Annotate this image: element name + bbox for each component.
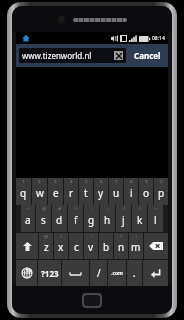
button[interactable]: -: [69, 233, 83, 259]
button[interactable]: ": [84, 233, 98, 259]
button[interactable]: @: [39, 233, 53, 259]
button[interactable]: Backspace: [144, 233, 168, 259]
staticText: 3: [54, 179, 57, 184]
staticText: ": [90, 234, 92, 239]
staticText: n: [118, 240, 125, 254]
button[interactable]: ~: [21, 205, 35, 232]
button[interactable]: #: [52, 205, 67, 232]
staticText: i: [130, 186, 133, 200]
button[interactable]: Cancel: [130, 48, 165, 63]
staticText: 5: [85, 179, 88, 184]
staticText: ?123: [41, 268, 59, 279]
button[interactable]: (: [116, 205, 131, 232]
staticText: 2: [38, 179, 41, 184]
staticText: .com: [111, 270, 123, 277]
button[interactable]: @: [36, 205, 51, 232]
staticText: Cancel: [134, 50, 161, 61]
staticText: d: [56, 213, 63, 227]
button[interactable]: 3: [48, 178, 63, 205]
staticText: 8: [130, 179, 133, 184]
button[interactable]: /: [90, 260, 107, 286]
staticText: u: [113, 186, 120, 200]
staticText: !: [135, 234, 137, 239]
staticText: z: [44, 240, 49, 254]
staticText: ,: [105, 234, 107, 239]
button[interactable]: !: [129, 233, 143, 259]
button[interactable]: Space: [62, 260, 89, 286]
staticText: ?: [120, 234, 122, 239]
staticText: #: [58, 206, 61, 211]
button[interactable]: www.tizenworld.nl: [19, 48, 126, 63]
staticText: g: [88, 213, 95, 227]
staticText: k: [137, 213, 143, 227]
staticText: e: [53, 186, 59, 200]
staticText: q: [20, 186, 27, 200]
other: Home: [22, 34, 30, 42]
staticText: ;: [107, 206, 109, 211]
staticText: f: [74, 213, 78, 227]
staticText: 0: [160, 179, 163, 184]
staticText: @: [44, 234, 48, 239]
button[interactable]: Home: [82, 293, 102, 308]
staticText: @: [42, 206, 46, 211]
staticText: -: [75, 234, 77, 239]
button[interactable]: .com: [108, 260, 126, 286]
button[interactable]: ;: [100, 205, 115, 232]
button[interactable]: ): [132, 205, 147, 232]
staticText: 6: [100, 179, 103, 184]
staticText: .: [133, 267, 136, 279]
staticText: 08:14: [152, 35, 165, 42]
staticText: ^: [74, 206, 77, 211]
staticText: 7: [115, 179, 118, 184]
staticText: /: [97, 266, 101, 280]
staticText: c: [74, 240, 79, 254]
button[interactable]: Shift: [16, 233, 38, 259]
staticText: x: [58, 240, 64, 254]
button[interactable]: 4: [64, 178, 78, 205]
staticText: w: [36, 186, 44, 200]
staticText: 9: [145, 179, 148, 184]
button[interactable]: 5: [79, 178, 93, 205]
staticText: j: [122, 213, 125, 227]
staticText: m: [131, 240, 141, 254]
button[interactable]: 8: [124, 178, 138, 205]
button[interactable]: ?: [114, 233, 128, 259]
staticText: v: [88, 240, 94, 254]
staticText: 1: [22, 179, 25, 184]
button[interactable]: 0: [154, 178, 168, 205]
button[interactable]: 1: [16, 178, 31, 205]
button[interactable]: 2: [32, 178, 47, 205]
button[interactable]: /: [54, 233, 68, 259]
staticText: EN: [26, 268, 32, 273]
staticText: ~: [27, 206, 30, 211]
staticText: ~: [154, 206, 157, 211]
staticText: s: [41, 213, 46, 227]
staticText: ): [139, 206, 141, 211]
button[interactable]: Enter: [143, 260, 168, 286]
button[interactable]: 7: [109, 178, 123, 205]
button[interactable]: 9: [139, 178, 153, 205]
button[interactable]: ,: [99, 233, 113, 259]
staticText: www.tizenworld.nl: [22, 50, 112, 61]
button[interactable]: :: [84, 205, 99, 232]
staticText: 4: [70, 179, 73, 184]
staticText: :: [91, 206, 93, 211]
staticText: h: [104, 213, 111, 227]
staticText: o: [143, 186, 150, 200]
button[interactable]: 6: [94, 178, 108, 205]
staticText: l: [154, 213, 157, 227]
staticText: t: [84, 186, 88, 200]
button[interactable]: .: [127, 260, 142, 286]
button[interactable]: ?123: [38, 260, 61, 286]
staticText: y: [98, 186, 104, 200]
staticText: a: [25, 213, 31, 227]
staticText: b: [103, 240, 110, 254]
staticText: r: [69, 186, 74, 200]
button[interactable]: Change language: [16, 260, 37, 286]
button[interactable]: Clear: [114, 51, 123, 60]
staticText: p: [158, 186, 165, 200]
staticText: /: [60, 234, 62, 239]
button[interactable]: ^: [68, 205, 83, 232]
staticText: (: [123, 206, 125, 211]
button[interactable]: ~: [148, 205, 163, 232]
